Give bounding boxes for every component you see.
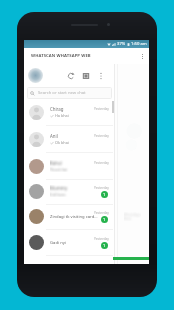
- button[interactable]: Zindagi tk visiting card h..: [24, 203, 114, 229]
- staticText: Yesterday: [94, 133, 110, 137]
- button[interactable]: Anil: [24, 126, 114, 152]
- staticText: Yesterday: [94, 236, 110, 240]
- staticText: Yesterday: [94, 106, 110, 110]
- button[interactable]: Search or start new chat: [27, 87, 112, 99]
- button[interactable]: Gadi nyi: [24, 229, 114, 255]
- staticText: Theek hai: [50, 167, 68, 172]
- button[interactable]: Rahul: [24, 153, 114, 179]
- button[interactable]: More options: [138, 52, 146, 60]
- staticText: Anil: [50, 133, 58, 139]
- staticText: Ha bhai: [55, 113, 69, 118]
- staticText: 1: [103, 192, 106, 197]
- staticText: 1: [103, 243, 106, 248]
- button[interactable]: Profile: [28, 68, 43, 83]
- button[interactable]: Linked devices: [79, 69, 92, 82]
- staticText: Call karo: [50, 192, 66, 197]
- staticText: WHATSCAN WHATSAPP WEB: [31, 53, 91, 59]
- staticText: Mummy: [50, 185, 68, 191]
- button[interactable]: Menu: [94, 69, 107, 82]
- staticText: Zindagi tk visiting card h..: [50, 214, 98, 220]
- staticText: 37%: [117, 41, 126, 47]
- staticText: Gadi nyi: [50, 240, 98, 246]
- button[interactable]: Chirag: [24, 99, 114, 125]
- staticText: 1:50 am: [131, 41, 147, 47]
- staticText: Yesterday: [94, 210, 110, 214]
- staticText: Search or start new chat: [38, 90, 86, 96]
- button[interactable]: Refresh: [64, 69, 77, 82]
- staticText: Chirag: [50, 106, 64, 112]
- staticText: WhatsApp Web: [124, 212, 141, 221]
- staticText: Yesterday: [94, 160, 110, 164]
- staticText: Yesterday: [94, 185, 110, 189]
- button[interactable]: Mummy: [24, 178, 114, 204]
- staticText: 1: [103, 217, 106, 222]
- staticText: Rahul: [50, 160, 62, 166]
- staticText: Ok bhai: [55, 140, 69, 145]
